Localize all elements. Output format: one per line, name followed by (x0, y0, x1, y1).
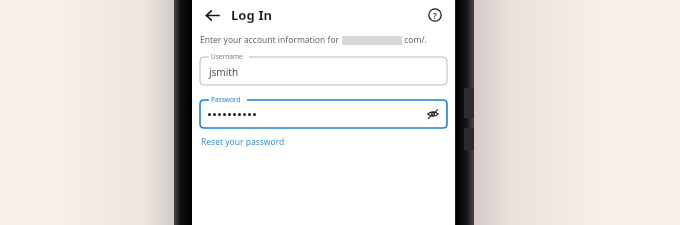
staticText: com/. (402, 34, 427, 46)
button[interactable]: Reset your password (200, 134, 286, 150)
staticText: ? (433, 10, 437, 21)
button[interactable]: Password (200, 95, 447, 128)
staticText: Username (211, 52, 243, 61)
staticText: Log In (231, 6, 273, 24)
button[interactable]: Show password (423, 104, 443, 124)
button[interactable]: Username (200, 52, 447, 85)
staticText: Password (211, 95, 241, 104)
button[interactable]: Back (199, 2, 225, 28)
button[interactable]: Help (423, 3, 447, 27)
staticText: Reset your password (201, 136, 285, 148)
staticText: Enter your account information for (200, 34, 342, 46)
staticText: jsmith (209, 65, 239, 79)
